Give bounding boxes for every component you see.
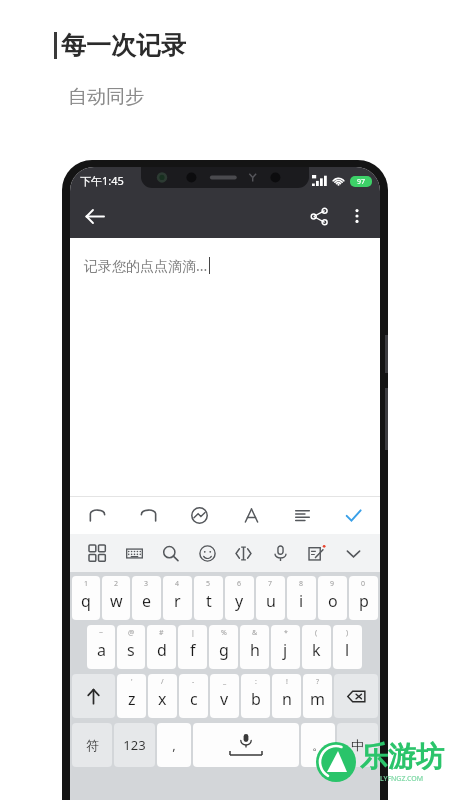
button[interactable]: Handwriting	[301, 538, 331, 568]
staticText: 8	[299, 579, 304, 589]
button[interactable]: @	[117, 625, 145, 669]
button[interactable]: ,	[157, 723, 191, 767]
staticText: d	[157, 639, 167, 661]
button[interactable]: /	[148, 674, 177, 718]
staticText: #	[159, 628, 164, 638]
button[interactable]: Back	[76, 198, 112, 234]
button[interactable]: Keyboard layout	[119, 538, 149, 568]
button[interactable]: !	[272, 674, 301, 718]
staticText: (	[315, 628, 318, 638]
button[interactable]: Space / Voice input	[193, 723, 299, 767]
button[interactable]: 3	[132, 576, 161, 620]
staticText: ~	[99, 628, 104, 638]
button[interactable]: &	[240, 625, 269, 669]
button[interactable]: _	[210, 674, 239, 718]
staticText: )	[346, 628, 349, 638]
button[interactable]: 8	[287, 576, 316, 620]
staticText: 1	[84, 579, 89, 589]
button[interactable]: 6	[225, 576, 254, 620]
staticText: |	[191, 628, 195, 638]
button[interactable]: Apps	[82, 538, 112, 568]
staticText: c	[190, 688, 198, 710]
staticText: i	[299, 590, 304, 612]
staticText: ,	[172, 736, 176, 754]
staticText: j	[283, 639, 288, 661]
button[interactable]: More options	[338, 197, 376, 235]
button[interactable]: (	[302, 625, 331, 669]
staticText: 9	[330, 579, 335, 589]
button[interactable]: 符	[72, 723, 112, 767]
staticText: y	[235, 590, 244, 612]
button[interactable]: #	[147, 625, 176, 669]
staticText: x	[158, 688, 167, 710]
staticText: l	[345, 639, 350, 661]
staticText: e	[142, 590, 152, 612]
button[interactable]: 9	[318, 576, 347, 620]
button[interactable]: Voice input	[265, 538, 295, 568]
button[interactable]: Emoji	[192, 538, 222, 568]
staticText: s	[127, 639, 135, 661]
staticText: :	[255, 677, 257, 687]
button[interactable]: Alignment	[287, 500, 317, 530]
button[interactable]: 7	[256, 576, 285, 620]
staticText: z	[128, 688, 136, 710]
staticText: f	[190, 639, 196, 661]
button[interactable]: -	[179, 674, 208, 718]
staticText: 97	[357, 177, 366, 187]
button[interactable]: 。	[301, 723, 335, 767]
staticText: @	[128, 628, 135, 638]
button[interactable]: Collapse keyboard	[338, 538, 368, 568]
button[interactable]: ?	[303, 674, 332, 718]
button[interactable]: ~	[87, 625, 115, 669]
button[interactable]: Done	[338, 500, 368, 530]
button[interactable]: 0	[349, 576, 378, 620]
button[interactable]: Shift	[72, 674, 115, 718]
button[interactable]: '	[117, 674, 146, 718]
staticText: n	[282, 688, 292, 710]
staticText: 123	[123, 736, 146, 754]
staticText: m	[310, 688, 325, 710]
staticText: a	[97, 639, 106, 661]
staticText: 中	[351, 737, 364, 753]
button[interactable]: |	[178, 625, 207, 669]
staticText: &	[252, 628, 258, 638]
button[interactable]: Undo	[82, 500, 112, 530]
staticText: 自动同步	[68, 85, 144, 109]
staticText: 7	[268, 579, 273, 589]
button[interactable]: Backspace	[334, 674, 378, 718]
staticText: 符	[86, 737, 99, 753]
staticText: p	[359, 590, 369, 612]
staticText: ?	[316, 677, 320, 687]
staticText: 2	[114, 579, 119, 589]
staticText: 4	[175, 579, 180, 589]
button[interactable]: *	[271, 625, 300, 669]
staticText: q	[81, 590, 91, 612]
staticText: 下午1:45	[80, 173, 124, 188]
button[interactable]: 123	[114, 723, 155, 767]
staticText: k	[312, 639, 321, 661]
staticText: 每一次记录	[61, 30, 186, 61]
button[interactable]: %	[209, 625, 238, 669]
staticText: !	[286, 677, 288, 687]
button[interactable]: 4	[163, 576, 192, 620]
staticText: '	[131, 677, 133, 687]
staticText: b	[251, 688, 261, 710]
staticText: 5	[206, 579, 211, 589]
button[interactable]: Text style	[236, 500, 266, 530]
button[interactable]: 2	[102, 576, 130, 620]
button[interactable]: :	[241, 674, 270, 718]
button[interactable]: Insert image	[184, 500, 214, 530]
button[interactable]: 1	[72, 576, 100, 620]
button[interactable]: Search	[155, 538, 185, 568]
staticText: g	[219, 639, 229, 661]
button[interactable]: 中	[337, 723, 378, 767]
button[interactable]: Cursor move	[228, 538, 258, 568]
button[interactable]: Redo	[133, 500, 163, 530]
staticText: t	[206, 590, 212, 612]
staticText: %	[221, 628, 227, 638]
button[interactable]: )	[333, 625, 362, 669]
button[interactable]: 5	[194, 576, 223, 620]
staticText: 3	[144, 579, 149, 589]
staticText: w	[110, 590, 123, 612]
button[interactable]: Share	[300, 197, 338, 235]
